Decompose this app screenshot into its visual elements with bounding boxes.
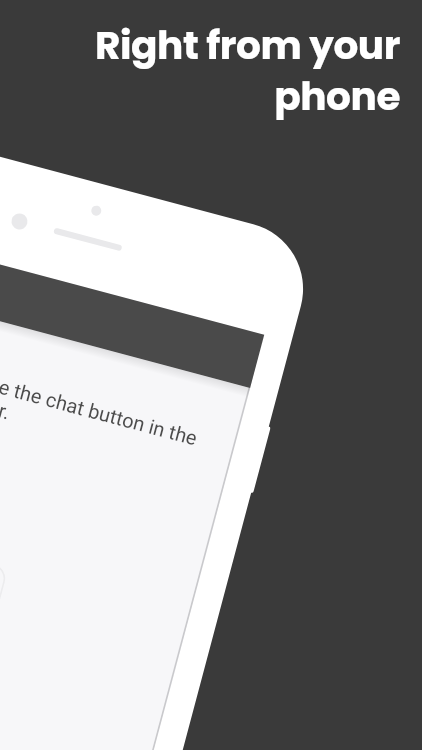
button[interactable]: Phone showing the chat screen xyxy=(0,127,296,750)
staticText: Just use the chat button in the xyxy=(0,358,200,450)
staticText: chat bar. xyxy=(0,381,13,423)
staticText: Right from your phone xyxy=(40,18,400,124)
